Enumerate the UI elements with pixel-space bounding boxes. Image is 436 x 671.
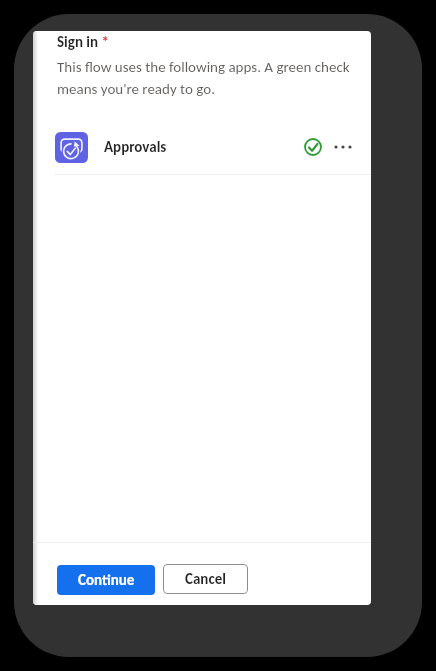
button[interactable]: Approvals: [33, 123, 371, 171]
staticText: This flow uses the following apps. A gre…: [57, 58, 350, 98]
staticText: Sign in *: [57, 33, 109, 51]
staticText: Cancel: [185, 570, 226, 588]
staticText: Approvals: [104, 138, 167, 156]
button[interactable]: Continue: [57, 565, 155, 595]
button[interactable]: Cancel: [163, 564, 248, 594]
button[interactable]: [334, 138, 352, 156]
staticText: Continue: [78, 571, 135, 589]
